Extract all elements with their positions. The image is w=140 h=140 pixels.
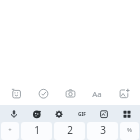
button[interactable]: % (120, 122, 139, 140)
staticText: 1 (34, 123, 40, 137)
button[interactable]: Text formatting (87, 84, 107, 103)
button[interactable]: Stickers (94, 105, 113, 122)
staticText: % (127, 126, 132, 134)
button[interactable]: Stickers (6, 84, 26, 103)
button[interactable]: GIF (72, 105, 91, 122)
button[interactable]: 3 (87, 122, 118, 140)
staticText: 3 (100, 123, 106, 137)
button[interactable]: Switch keyboard (117, 105, 136, 122)
staticText: 2 (67, 123, 73, 137)
staticText: Aa (92, 89, 102, 100)
button[interactable]: Settings (49, 105, 68, 122)
button[interactable]: Camera (60, 84, 80, 103)
button[interactable]: Voice input (4, 105, 23, 122)
button[interactable]: 1 (21, 122, 52, 140)
button[interactable]: Add image (114, 84, 134, 103)
button[interactable]: + (1, 122, 19, 140)
staticText: + (8, 126, 12, 134)
staticText: GIF (78, 111, 86, 118)
button[interactable]: Select (33, 84, 53, 103)
button[interactable]: 2 (54, 122, 85, 140)
button[interactable]: Themes (27, 105, 46, 122)
